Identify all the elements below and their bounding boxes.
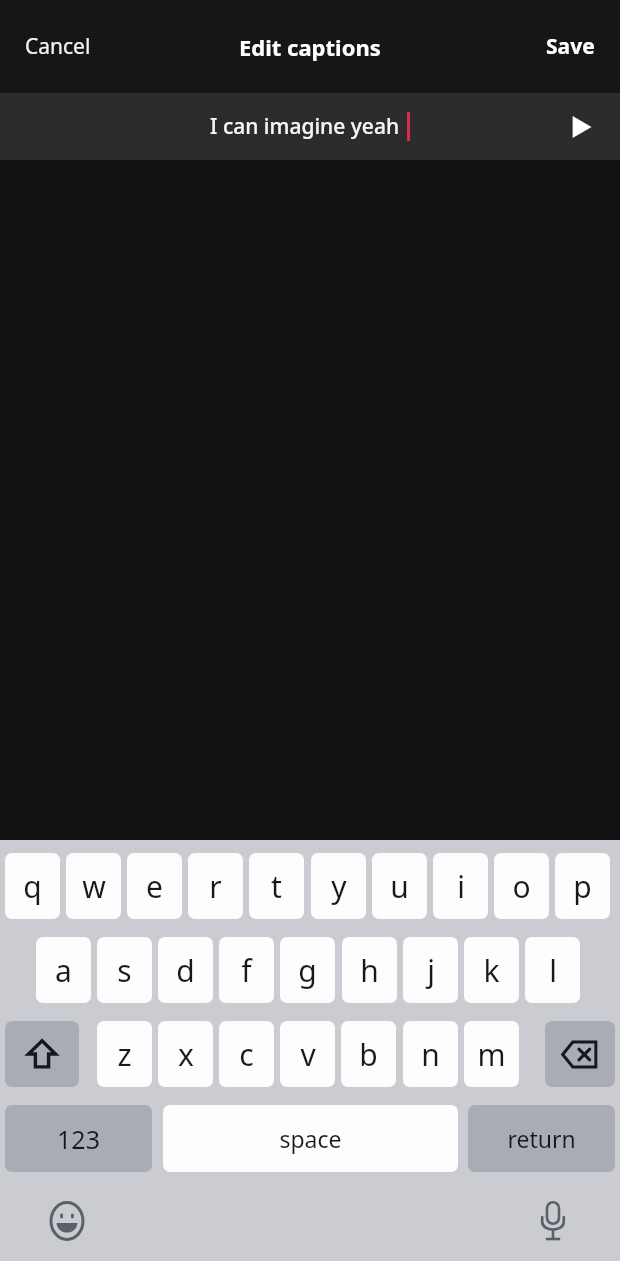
button[interactable]: u [372,853,427,919]
button[interactable]: Shift [5,1021,79,1087]
staticText: y [331,866,347,907]
button[interactable]: h [342,937,397,1003]
button[interactable]: y [311,853,366,919]
staticText: i [457,866,465,907]
button[interactable]: r [188,853,243,919]
staticText: e [146,866,163,907]
button[interactable]: k [464,937,519,1003]
button[interactable]: space [163,1105,458,1172]
staticText: return [507,1123,576,1154]
button[interactable]: e [127,853,182,919]
button[interactable]: i [433,853,488,919]
button[interactable]: g [280,937,335,1003]
staticText: t [271,866,282,907]
button[interactable]: Dictation [524,1192,582,1250]
staticText: w [82,866,106,907]
staticText: k [483,950,500,991]
button[interactable]: m [464,1021,519,1087]
button[interactable]: return [468,1105,615,1172]
button[interactable]: n [403,1021,458,1087]
staticText: d [176,950,195,991]
button[interactable]: o [494,853,549,919]
staticText: o [512,866,531,907]
staticText: b [359,1034,378,1075]
button[interactable]: I can imagine yeah [210,112,410,141]
staticText: Cancel [25,32,91,61]
button[interactable]: 123 [5,1105,152,1172]
staticText: q [23,866,42,907]
button[interactable]: l [525,937,580,1003]
staticText: g [298,950,317,991]
button[interactable]: p [555,853,610,919]
staticText: h [360,950,379,991]
staticText: n [421,1034,440,1075]
button[interactable]: f [219,937,274,1003]
button[interactable]: s [97,937,152,1003]
staticText: s [117,950,132,991]
staticText: p [573,866,592,907]
button[interactable]: d [158,937,213,1003]
staticText: 123 [57,1122,100,1156]
button[interactable]: w [66,853,121,919]
staticText: r [209,866,222,907]
button[interactable]: c [219,1021,274,1087]
button[interactable]: j [403,937,458,1003]
button[interactable]: Emoji [38,1192,96,1250]
button[interactable]: Cancel [8,22,108,71]
staticText: space [279,1123,342,1154]
staticText: m [477,1034,506,1075]
button[interactable]: x [158,1021,213,1087]
staticText: j [427,950,435,991]
button[interactable]: v [280,1021,335,1087]
button[interactable]: b [341,1021,396,1087]
button[interactable]: t [249,853,304,919]
staticText: l [549,950,557,991]
staticText: z [117,1034,132,1075]
button[interactable]: Save [529,22,612,71]
staticText: Save [546,32,595,61]
staticText: I can imagine yeah [210,112,400,141]
staticText: v [300,1034,316,1075]
staticText: u [390,866,409,907]
button[interactable]: Play [556,102,606,152]
button[interactable]: q [5,853,60,919]
staticText: a [55,950,72,991]
button[interactable]: Delete [545,1021,615,1087]
staticText: x [178,1034,194,1075]
staticText: f [241,950,252,991]
button[interactable]: z [97,1021,152,1087]
button[interactable]: a [36,937,91,1003]
staticText: c [239,1034,254,1075]
staticText: Edit captions [239,32,381,62]
